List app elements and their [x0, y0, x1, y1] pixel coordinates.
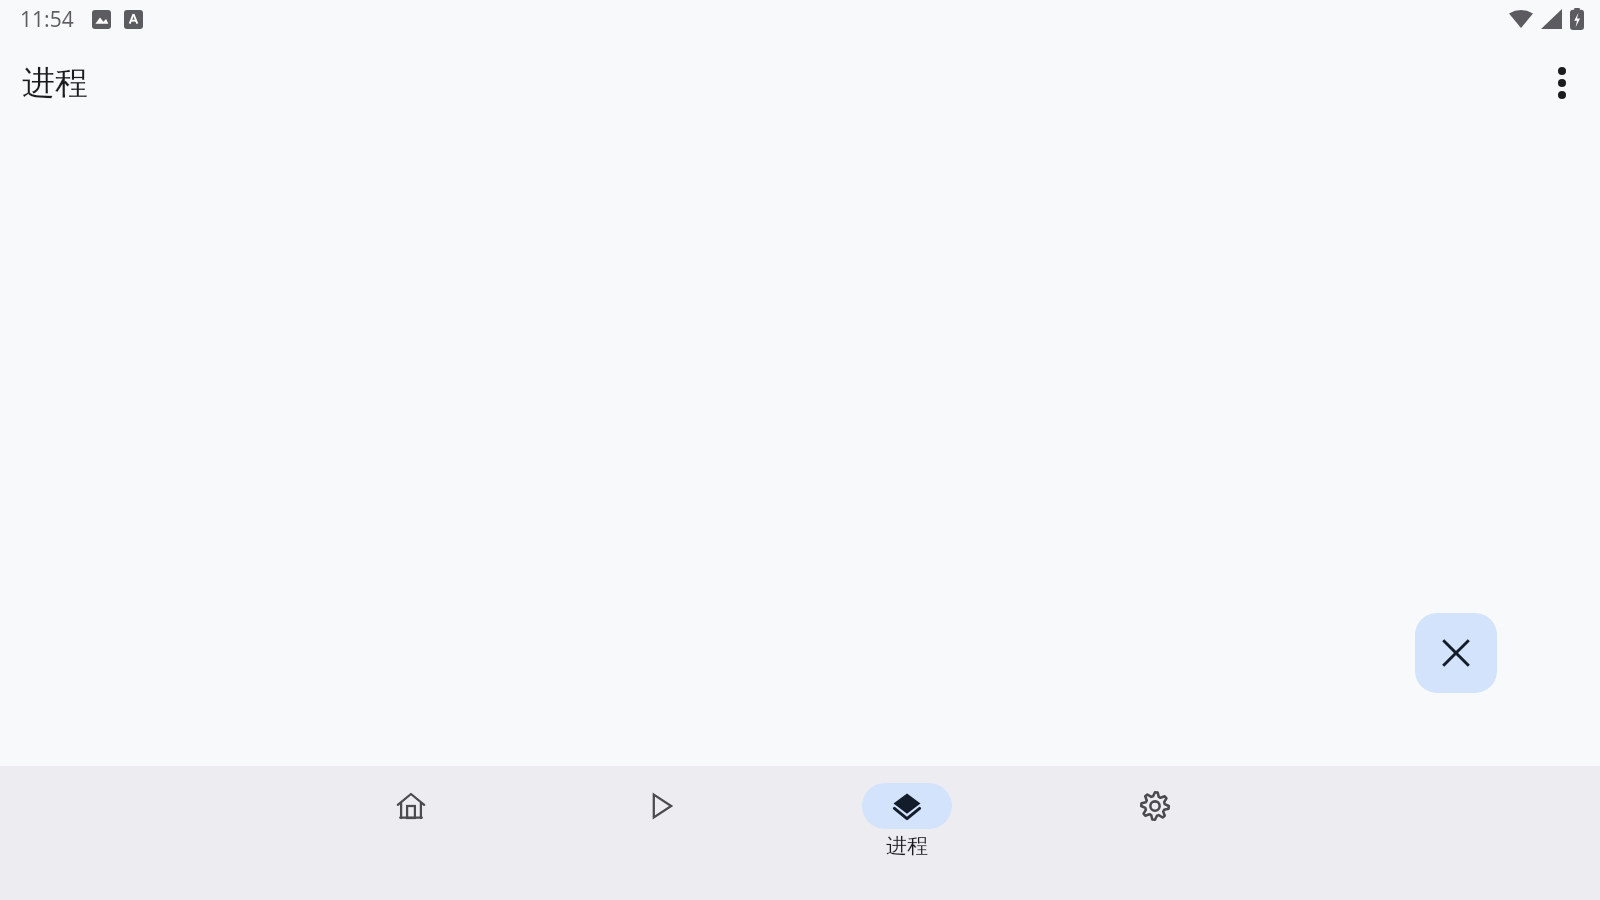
button[interactable]: Home [351, 766, 471, 900]
staticText: 进程 [886, 833, 928, 859]
button[interactable]: More options [1532, 53, 1592, 113]
button[interactable]: Play [601, 766, 721, 900]
staticText: 11:54 [20, 5, 74, 34]
button[interactable]: Settings [1095, 766, 1215, 900]
staticText: 进程 [22, 62, 88, 104]
button[interactable]: 进程 [847, 766, 967, 900]
button[interactable]: Close [1415, 613, 1497, 693]
